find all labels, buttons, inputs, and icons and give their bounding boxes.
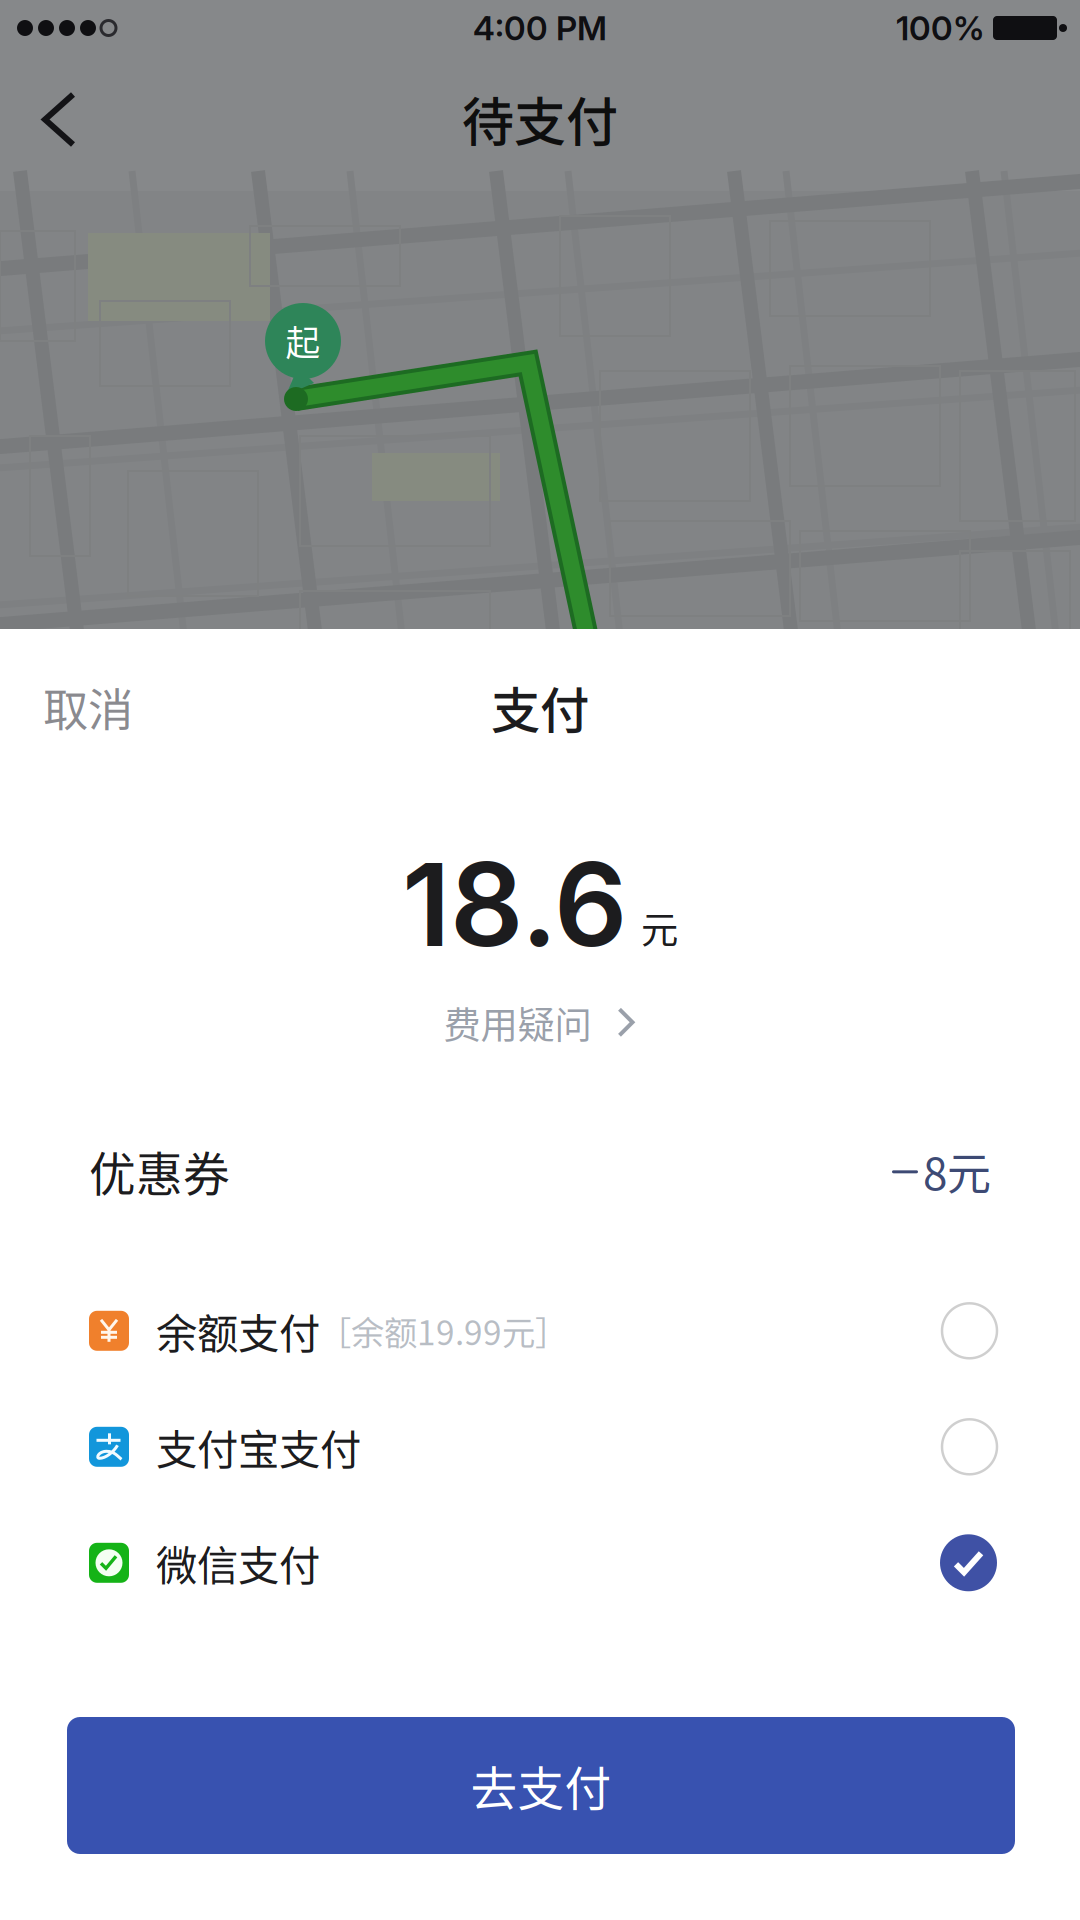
staticText: 100% <box>896 8 984 48</box>
staticText: 优惠券 <box>89 1137 230 1205</box>
staticText: 8元 <box>923 1139 991 1203</box>
staticText: 取消 <box>43 674 133 740</box>
button[interactable]: 费用疑问 <box>443 974 636 1072</box>
button[interactable]: 优惠券 <box>0 1134 1080 1208</box>
staticText: 待支付 <box>462 81 618 156</box>
staticText: ［余额19.99元］ <box>318 1307 568 1355</box>
staticText: 费用疑问 <box>443 996 591 1050</box>
staticText: 支付 <box>491 671 589 743</box>
button[interactable]: 返回 <box>0 56 108 191</box>
staticText: 余额支付 <box>156 1301 320 1361</box>
button[interactable]: 去支付 <box>67 1717 1015 1854</box>
staticText: 起 <box>285 316 320 366</box>
button[interactable]: 微信支付 <box>0 1505 1080 1621</box>
staticText: 元 <box>641 901 678 955</box>
staticText: 去支付 <box>470 1752 611 1819</box>
staticText: 4:00 PM <box>473 8 607 48</box>
staticText: 微信支付 <box>156 1533 320 1593</box>
button[interactable]: 取消 <box>0 659 165 755</box>
staticText: 支付宝支付 <box>156 1417 361 1477</box>
staticText: 18.6 <box>402 835 627 974</box>
button[interactable]: 支付宝支付 <box>0 1389 1080 1505</box>
button[interactable]: 余额支付 <box>0 1273 1080 1389</box>
